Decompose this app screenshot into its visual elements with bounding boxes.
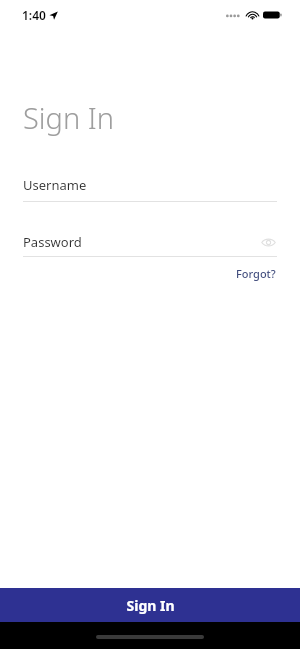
staticText: Sign In	[126, 596, 175, 615]
button[interactable]: Username	[23, 176, 277, 202]
staticText: Forgot?	[236, 266, 276, 281]
button[interactable]: Sign In	[0, 588, 300, 622]
button[interactable]: Forgot?	[235, 265, 277, 282]
button[interactable]: Password	[23, 233, 277, 257]
staticText: Password	[23, 233, 82, 251]
staticText: 1:40	[22, 7, 46, 23]
staticText: Sign In	[23, 98, 115, 137]
button[interactable]: Show password	[259, 233, 277, 251]
staticText: Username	[23, 176, 87, 194]
